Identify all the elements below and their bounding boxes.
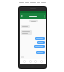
button[interactable]: Back — [20, 14, 24, 18]
button[interactable] — [35, 37, 45, 40]
button[interactable]: Compose action — [34, 60, 37, 63]
button[interactable] — [21, 30, 32, 35]
button[interactable] — [21, 25, 30, 28]
button[interactable]: More options — [43, 15, 46, 18]
button[interactable]: Compose action — [29, 60, 32, 63]
button[interactable]: Compose action — [40, 60, 43, 63]
button[interactable]: Compose action — [23, 60, 26, 63]
button[interactable] — [37, 41, 45, 44]
button[interactable]: Compose action — [20, 59, 46, 64]
button[interactable]: Back — [20, 11, 46, 19]
button[interactable] — [36, 51, 45, 54]
button[interactable] — [34, 45, 45, 48]
